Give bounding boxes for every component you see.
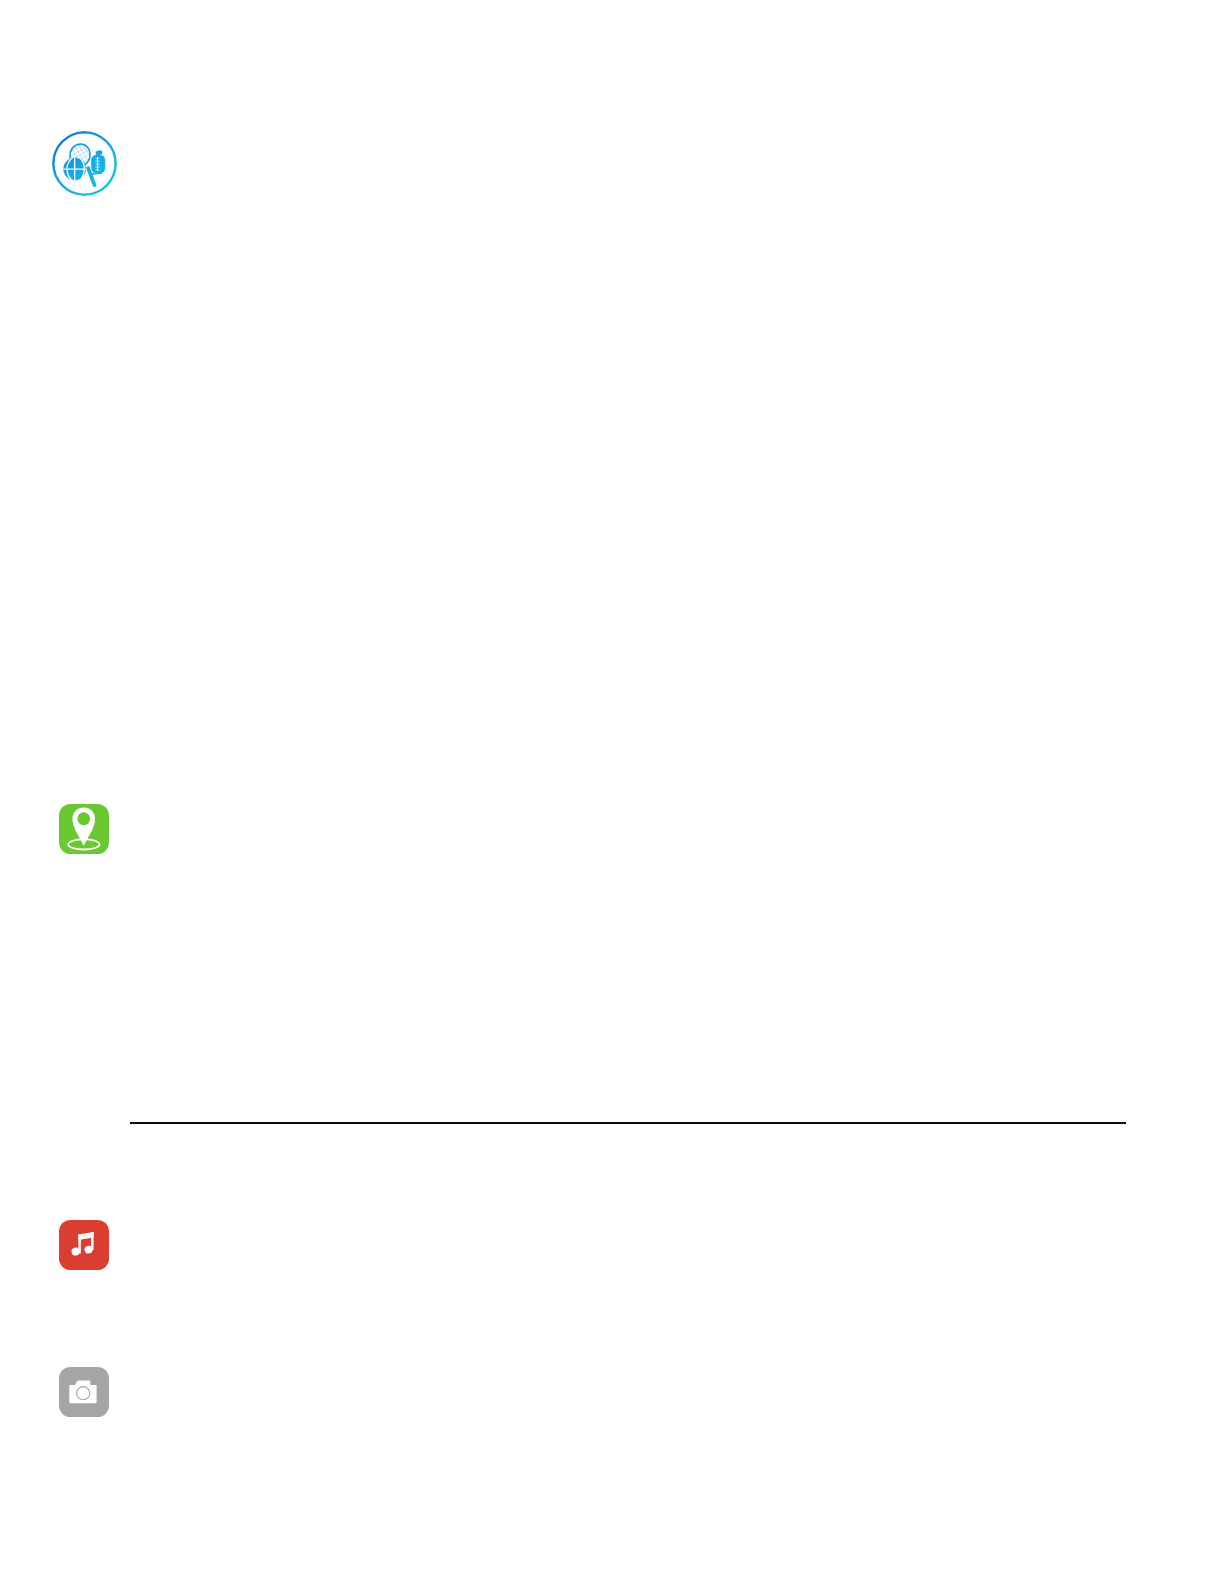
button[interactable]: Camera (59, 1367, 109, 1417)
button[interactable]: Sports (0, 0, 1224, 660)
button[interactable]: Location (59, 804, 109, 854)
button[interactable]: Location (0, 660, 1224, 1120)
button[interactable]: Camera (0, 1273, 1224, 1584)
button[interactable]: Sports (52, 131, 117, 196)
button[interactable]: Music (0, 1126, 1224, 1273)
button[interactable]: Music (59, 1220, 109, 1270)
